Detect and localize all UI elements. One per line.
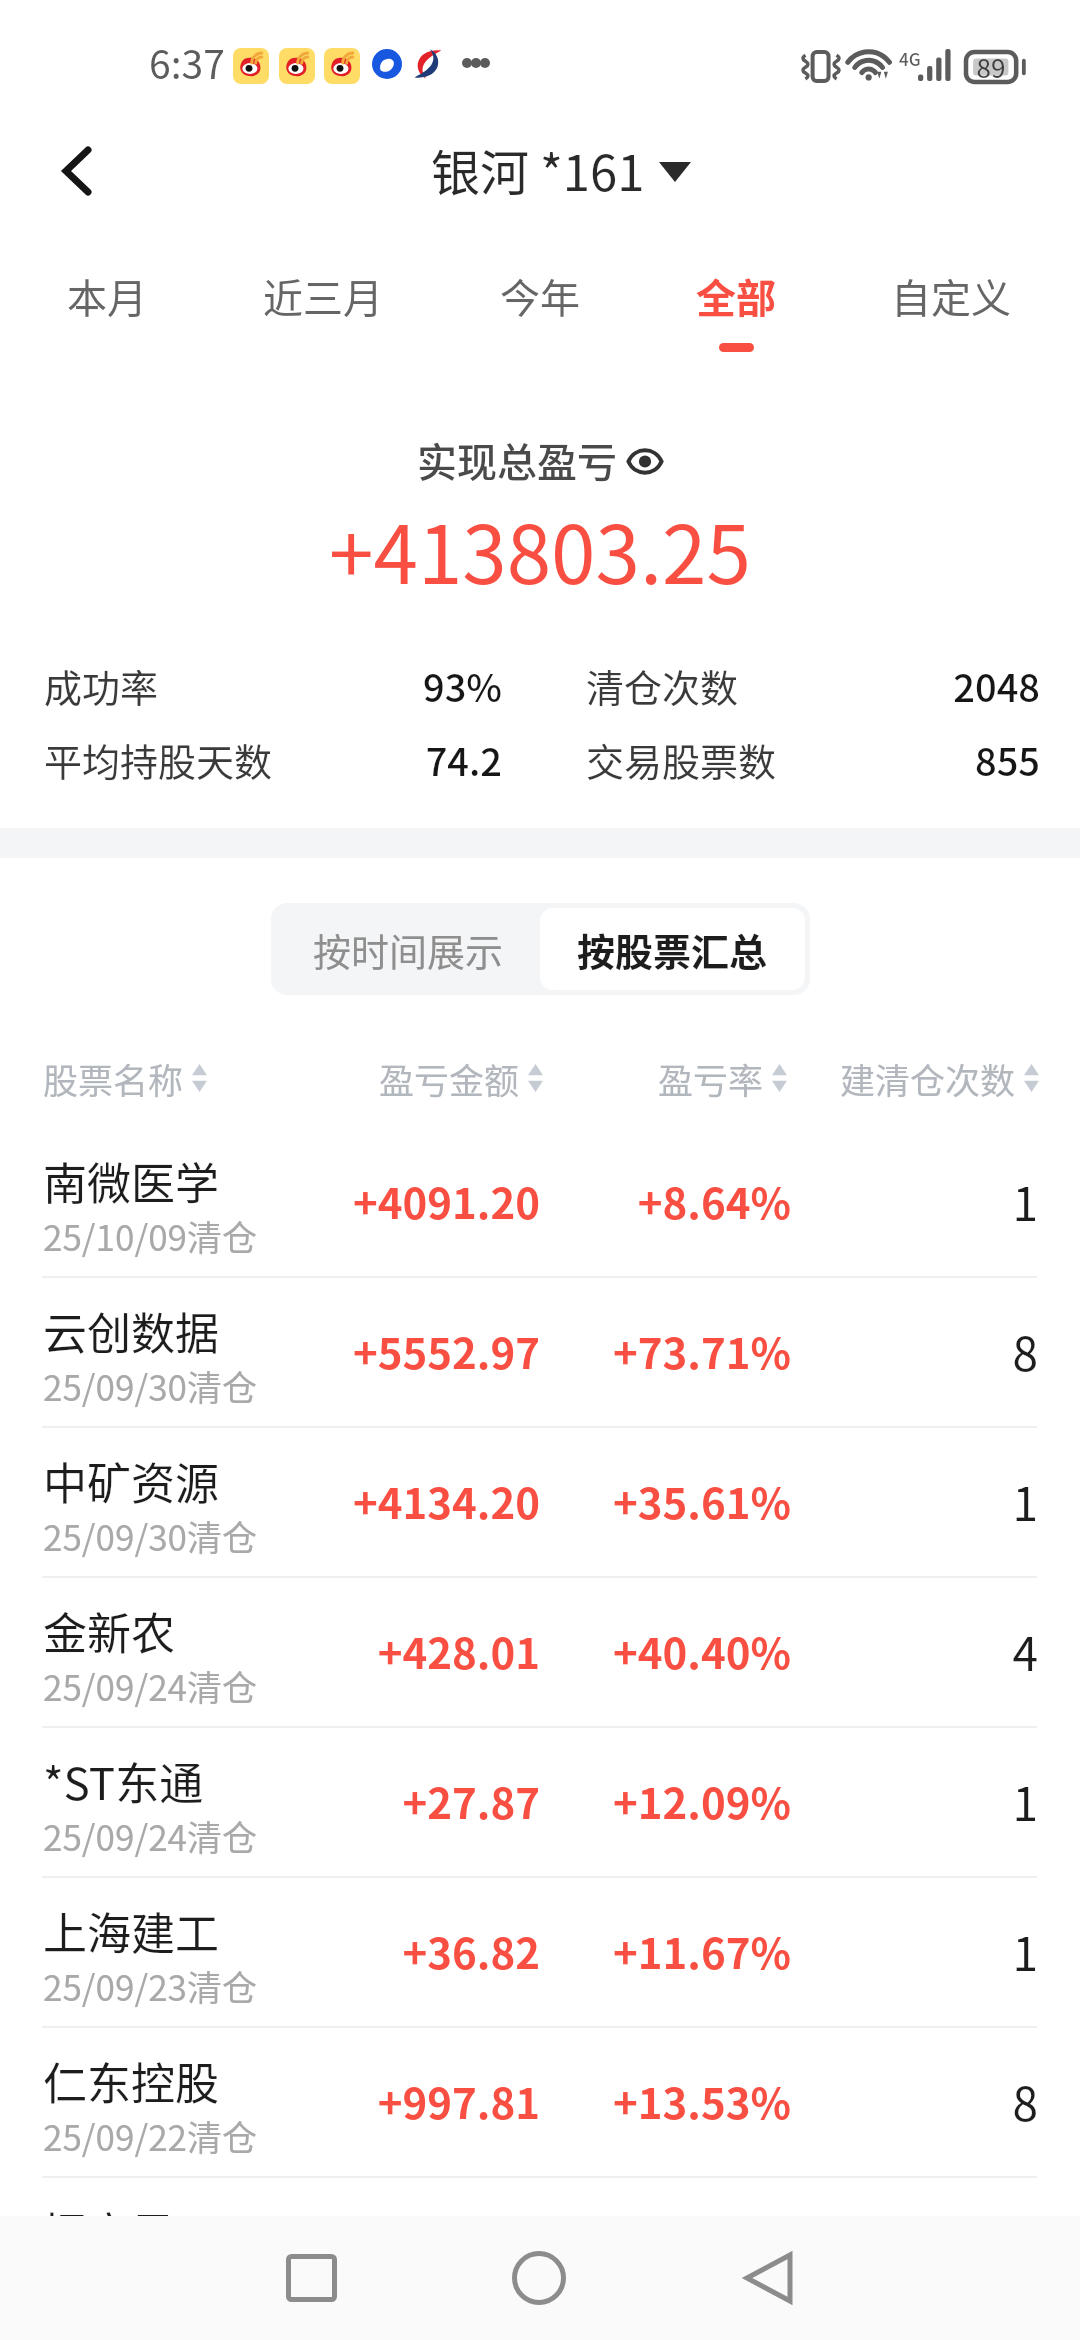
button[interactable]: Back xyxy=(716,2225,820,2331)
staticText: 银河 *161 xyxy=(431,134,645,205)
staticText: 74.2 xyxy=(300,732,502,782)
staticText: +36.82 xyxy=(300,1920,540,1981)
button[interactable]: 金新农 xyxy=(0,1578,1080,1728)
button[interactable]: 股票名称 xyxy=(43,1049,207,1107)
staticText: +9.10% xyxy=(580,2220,791,2281)
staticText: 25/09/24清仓 xyxy=(43,1660,257,1711)
staticText: 1 xyxy=(880,1168,1038,1235)
staticText: 1 xyxy=(880,1918,1038,1985)
staticText: 2048 xyxy=(838,658,1040,708)
staticText: +428.01 xyxy=(300,1620,540,1681)
staticText: 4G xyxy=(899,46,921,71)
button[interactable]: 本月 xyxy=(7,230,207,360)
staticText: 按股票汇总 xyxy=(577,922,768,977)
staticText: +73.71% xyxy=(580,1320,791,1381)
staticText: +1200.00 xyxy=(300,2220,540,2281)
staticText: 招商局 xyxy=(43,2199,175,2263)
staticText: +997.81 xyxy=(300,2070,540,2131)
staticText: +413803.25 xyxy=(0,491,1080,607)
staticText: +40.40% xyxy=(580,1620,791,1681)
staticText: 8 xyxy=(880,2068,1038,2135)
staticText: +4134.20 xyxy=(300,1470,540,1531)
button[interactable]: 上海建工 xyxy=(0,1878,1080,2028)
staticText: +4091.20 xyxy=(300,1170,540,1231)
button[interactable]: 近三月 xyxy=(223,230,423,360)
button[interactable]: 招商局 xyxy=(0,2178,1080,2328)
staticText: 盈亏率 xyxy=(658,1053,764,1104)
staticText: 25/09/24清仓 xyxy=(43,1810,257,1861)
staticText: 清仓次数 xyxy=(586,658,739,708)
button[interactable]: Recents xyxy=(255,2225,367,2331)
staticText: 中矿资源 xyxy=(43,1449,219,1513)
button[interactable]: Back xyxy=(37,131,117,211)
staticText: 金新农 xyxy=(43,1599,175,1663)
staticText: 1 xyxy=(880,1768,1038,1835)
staticText: 4 xyxy=(880,1618,1038,1685)
staticText: +35.61% xyxy=(580,1470,791,1531)
staticText: 按时间展示 xyxy=(313,922,504,977)
staticText: 成功率 xyxy=(44,658,159,708)
staticText: 自定义 xyxy=(891,267,1011,325)
staticText: 南微医学 xyxy=(43,1149,219,1213)
button[interactable]: 南微医学 xyxy=(0,1128,1080,1278)
button[interactable]: 盈亏金额 xyxy=(379,1049,543,1107)
button[interactable]: 今年 xyxy=(440,230,640,360)
button[interactable]: Toggle amount visibility xyxy=(627,445,663,476)
button[interactable]: 按股票汇总 xyxy=(540,908,805,990)
staticText: 近三月 xyxy=(263,267,383,325)
staticText: 全部 xyxy=(696,267,776,325)
staticText: +12.09% xyxy=(580,1770,791,1831)
button[interactable]: 按时间展示 xyxy=(276,908,540,990)
staticText: 25/09/30清仓 xyxy=(43,1360,257,1411)
staticText: +5552.97 xyxy=(300,1320,540,1381)
staticText: +8.64% xyxy=(580,1170,791,1231)
button[interactable]: 盈亏率 xyxy=(658,1049,787,1107)
staticText: 89 xyxy=(966,48,1016,86)
staticText: 1 xyxy=(880,1468,1038,1535)
staticText: +11.67% xyxy=(580,1920,791,1981)
staticText: 实现总盈亏 xyxy=(417,431,617,489)
staticText: 855 xyxy=(838,732,1040,782)
button[interactable]: 自定义 xyxy=(851,230,1051,360)
staticText: +27.87 xyxy=(300,1770,540,1831)
staticText: 25/10/09清仓 xyxy=(43,1210,257,1261)
staticText: 25/09/22清仓 xyxy=(43,2110,257,2161)
button[interactable]: Home xyxy=(484,2225,594,2331)
staticText: 交易股票数 xyxy=(586,732,777,782)
button[interactable]: 仁东控股 xyxy=(0,2028,1080,2178)
button[interactable]: 中矿资源 xyxy=(0,1428,1080,1578)
staticText: 93% xyxy=(300,658,502,708)
staticText: 8 xyxy=(880,1318,1038,1385)
staticText: 本月 xyxy=(67,267,147,325)
staticText: 6:37 xyxy=(149,34,225,90)
staticText: 股票名称 xyxy=(43,1053,184,1104)
staticText: +13.53% xyxy=(580,2070,791,2131)
staticText: 上海建工 xyxy=(43,1899,219,1963)
staticText: 25/09/30清仓 xyxy=(43,1510,257,1561)
staticText: 云创数据 xyxy=(43,1299,219,1363)
staticText: 仁东控股 xyxy=(43,2049,219,2113)
staticText: 建清仓次数 xyxy=(840,1053,1016,1104)
staticText: 今年 xyxy=(500,267,580,325)
staticText: *ST东通 xyxy=(43,1749,204,1813)
button[interactable]: 云创数据 xyxy=(0,1278,1080,1428)
staticText: 盈亏金额 xyxy=(379,1053,520,1104)
button[interactable]: *ST东通 xyxy=(0,1728,1080,1878)
staticText: 平均持股天数 xyxy=(44,732,273,782)
button[interactable]: 全部 xyxy=(636,230,836,360)
staticText: 25/09/23清仓 xyxy=(43,1960,257,2011)
button[interactable]: 银河 *161 xyxy=(431,134,691,205)
button[interactable]: 建清仓次数 xyxy=(840,1049,1039,1107)
